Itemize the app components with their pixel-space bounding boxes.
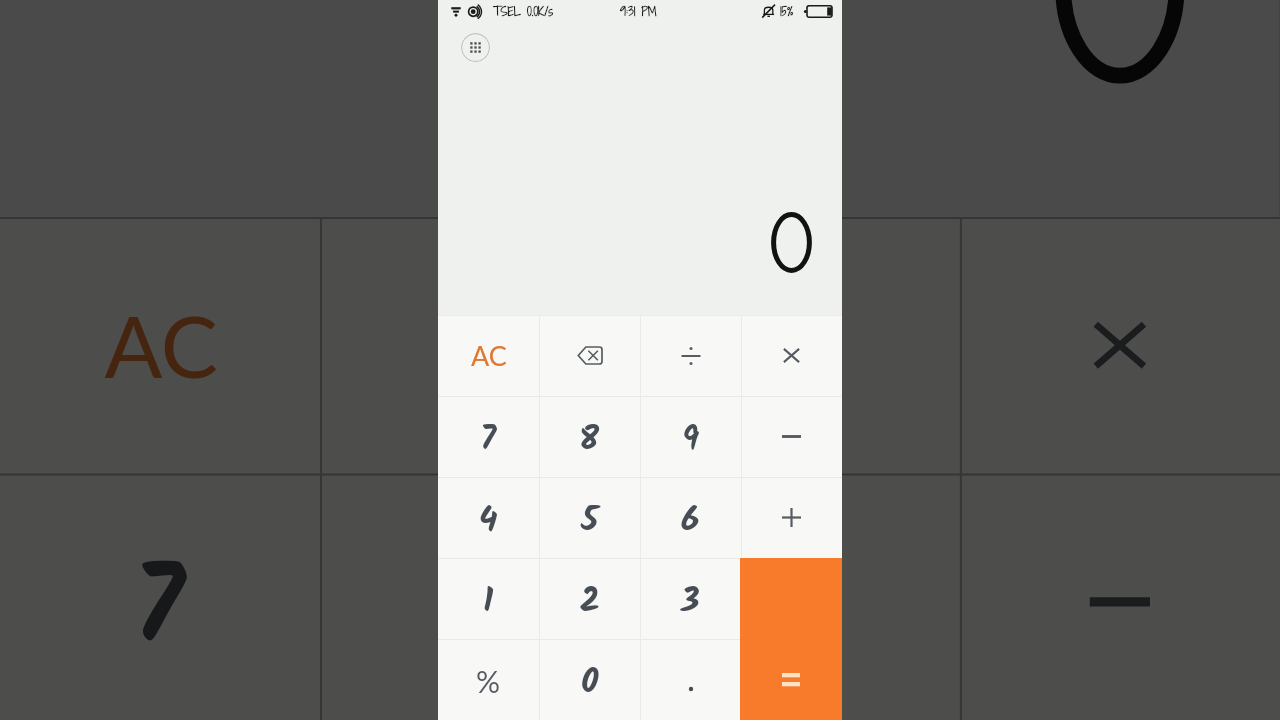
staticText: TSEL 0.0K/s [493, 3, 554, 20]
button[interactable]: Decimal point [640, 639, 741, 720]
button[interactable]: Nine [640, 396, 741, 477]
button[interactable]: Apps menu [461, 33, 490, 62]
button[interactable]: Eight [539, 396, 640, 477]
button[interactable]: Equals [740, 558, 842, 720]
staticText: AC [471, 339, 507, 371]
staticText: 2 [580, 575, 600, 629]
button[interactable]: Backspace [539, 315, 640, 396]
button[interactable]: Seven [438, 396, 539, 477]
staticText: 4 [479, 494, 498, 548]
button[interactable]: Multiply [741, 315, 842, 396]
button[interactable]: Percent [438, 639, 539, 720]
button[interactable]: Minus [741, 396, 842, 477]
staticText: 7 [133, 527, 187, 698]
button[interactable]: One [438, 558, 539, 639]
staticText: 5 [581, 494, 599, 548]
button[interactable]: Five [539, 477, 640, 558]
button[interactable]: Six [640, 477, 741, 558]
button[interactable]: Two [539, 558, 640, 639]
staticText: 8 [447, 527, 513, 698]
staticText: 7 [480, 413, 497, 467]
staticText: 8 [579, 413, 600, 467]
button[interactable]: All clear [438, 315, 539, 396]
staticText: 9 [682, 413, 700, 467]
staticText: 15% [780, 3, 794, 20]
staticText: AC [104, 293, 218, 394]
button[interactable]: Four [438, 477, 539, 558]
staticText: 6 [681, 494, 700, 548]
staticText: 9:31 PM [620, 3, 657, 20]
button[interactable]: Plus [741, 477, 842, 558]
staticText: 9 [773, 527, 830, 698]
staticText: 0 [581, 656, 599, 710]
staticText: 3 [681, 575, 700, 629]
button[interactable]: Zero [539, 639, 640, 720]
button[interactable]: Divide [640, 315, 741, 396]
staticText: 1 [483, 575, 494, 629]
button[interactable]: Three [640, 558, 741, 639]
staticText: % [476, 663, 501, 699]
